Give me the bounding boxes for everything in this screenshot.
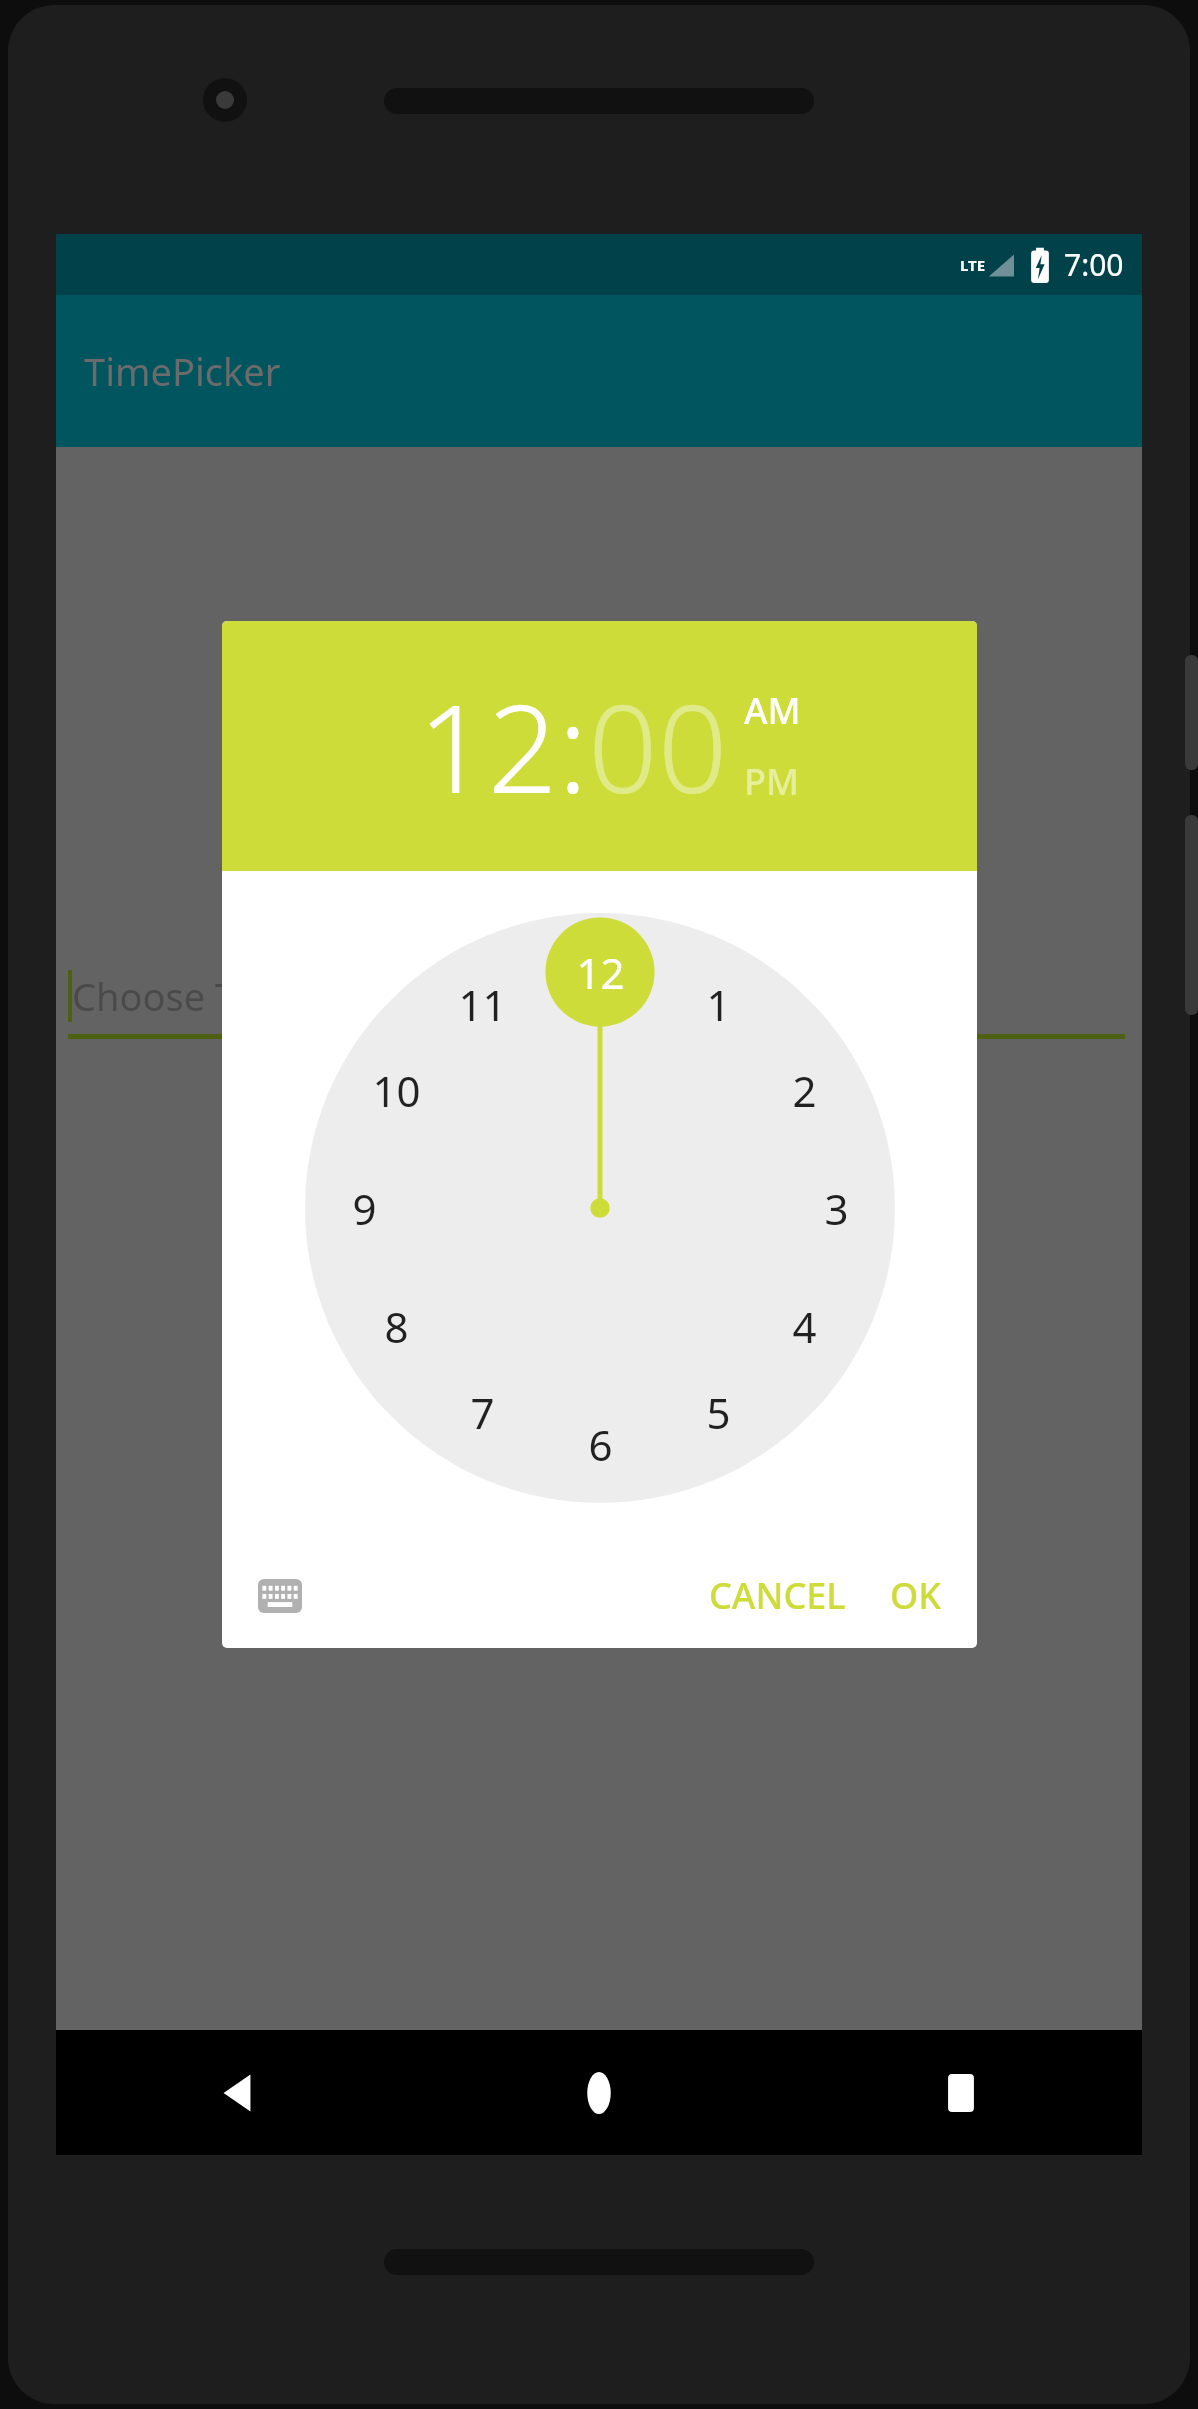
- button[interactable]: Switch to text input mode: [244, 1560, 316, 1632]
- staticText: 2: [792, 1062, 817, 1119]
- staticText: 5: [706, 1384, 731, 1441]
- staticText: 7:00: [1064, 244, 1124, 285]
- staticText: LTE: [960, 255, 986, 275]
- staticText: :: [558, 663, 588, 829]
- button[interactable]: 4: [305, 913, 895, 1503]
- button[interactable]: Recent apps: [906, 2038, 1016, 2148]
- button[interactable]: 00: [588, 663, 728, 829]
- button[interactable]: Home: [544, 2038, 654, 2148]
- button[interactable]: 3: [305, 913, 895, 1503]
- button[interactable]: Back: [182, 2038, 292, 2148]
- staticText: 6: [588, 1416, 613, 1473]
- button[interactable]: 10: [305, 913, 895, 1503]
- staticText: 4: [792, 1298, 817, 1355]
- button[interactable]: 9: [305, 913, 895, 1503]
- staticText: 10: [372, 1062, 421, 1119]
- button[interactable]: 12: [305, 913, 895, 1503]
- staticText: 11: [458, 976, 507, 1033]
- staticText: 9: [352, 1180, 377, 1237]
- button[interactable]: CANCEL: [687, 1557, 868, 1634]
- staticText: CANCEL: [709, 1571, 846, 1620]
- button[interactable]: 1: [305, 913, 895, 1503]
- button[interactable]: AM: [744, 686, 801, 735]
- button[interactable]: PM: [744, 757, 800, 806]
- staticText: 1: [706, 976, 731, 1033]
- button[interactable]: Choose Time: [56, 953, 1142, 1039]
- staticText: TimePicker: [84, 345, 281, 397]
- button[interactable]: 7: [305, 913, 895, 1503]
- staticText: Choose Time: [72, 970, 303, 1022]
- button[interactable]: 12: [418, 663, 558, 829]
- button[interactable]: 5: [305, 913, 895, 1503]
- staticText: 3: [824, 1180, 849, 1237]
- staticText: 12: [576, 944, 625, 1001]
- staticText: 7: [470, 1384, 495, 1441]
- button[interactable]: 8: [305, 913, 895, 1503]
- button[interactable]: 11: [305, 913, 895, 1503]
- staticText: OK: [890, 1571, 941, 1620]
- button[interactable]: OK: [868, 1557, 963, 1634]
- staticText: 8: [384, 1298, 409, 1355]
- button[interactable]: 6: [305, 913, 895, 1503]
- button[interactable]: 2: [305, 913, 895, 1503]
